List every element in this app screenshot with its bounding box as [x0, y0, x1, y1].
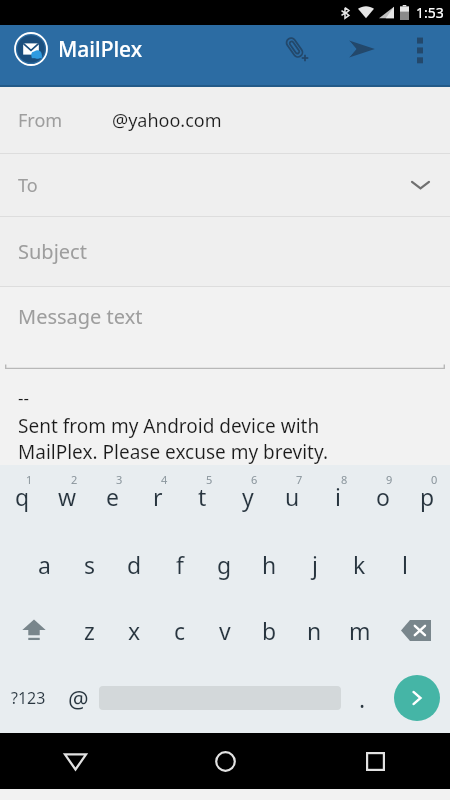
button[interactable]: From — [0, 87, 450, 153]
staticText: e — [106, 481, 119, 512]
button[interactable]: Send — [338, 25, 386, 73]
staticText: From — [18, 108, 63, 133]
button[interactable]: j — [292, 531, 337, 597]
staticText: f — [176, 549, 184, 580]
staticText: Message text — [18, 303, 143, 330]
staticText: MailPlex — [58, 35, 143, 64]
staticText: Subject — [18, 238, 87, 265]
button[interactable]: @ — [57, 663, 99, 733]
button[interactable]: x — [112, 597, 157, 663]
staticText: 3 — [116, 472, 123, 487]
staticText: d — [127, 549, 142, 580]
button[interactable]: ?123 — [0, 663, 57, 733]
staticText: x — [128, 615, 141, 646]
staticText: 4 — [161, 472, 168, 487]
button[interactable]: 5 — [180, 465, 225, 531]
button[interactable]: k — [337, 531, 382, 597]
staticText: 1 — [26, 472, 33, 487]
staticText: 1:53 — [416, 3, 444, 22]
button[interactable]: h — [247, 531, 292, 597]
staticText: 0 — [431, 472, 438, 487]
button[interactable]: Subject — [0, 217, 450, 286]
staticText: s — [84, 549, 96, 580]
staticText: y — [242, 481, 254, 512]
button[interactable]: c — [157, 597, 202, 663]
button[interactable]: v — [202, 597, 247, 663]
staticText: 7 — [296, 472, 303, 487]
staticText: o — [376, 481, 390, 512]
button[interactable]: 0 — [405, 465, 450, 531]
staticText: 6 — [251, 472, 258, 487]
staticText: g — [217, 549, 232, 580]
staticText: 2 — [71, 472, 78, 487]
button[interactable]: l — [382, 531, 427, 597]
button[interactable]: d — [112, 531, 157, 597]
button[interactable]: g — [202, 531, 247, 597]
button[interactable]: f — [157, 531, 202, 597]
button[interactable]: 2 — [45, 465, 90, 531]
staticText: r — [153, 481, 163, 512]
button[interactable]: Shift — [0, 597, 67, 663]
button[interactable]: z — [67, 597, 112, 663]
button[interactable]: b — [247, 597, 292, 663]
button[interactable]: 8 — [315, 465, 360, 531]
button[interactable]: More options — [398, 27, 442, 71]
staticText: @yahoo.com — [112, 108, 222, 133]
button[interactable]: Enter — [383, 663, 450, 733]
button[interactable]: Home — [150, 733, 300, 789]
button[interactable]: n — [292, 597, 337, 663]
button[interactable]: Expand recipients — [398, 163, 442, 207]
button[interactable]: To — [0, 154, 450, 216]
staticText: 9 — [386, 472, 393, 487]
button[interactable]: 1 — [0, 465, 45, 531]
button[interactable]: s — [67, 531, 112, 597]
staticText: k — [353, 549, 366, 580]
staticText: Sent from my Android device with — [18, 413, 320, 439]
staticText: i — [335, 481, 341, 512]
button[interactable]: 4 — [135, 465, 180, 531]
staticText: p — [420, 481, 435, 512]
staticText: j — [312, 549, 318, 580]
staticText: z — [84, 615, 95, 646]
staticText: q — [15, 481, 30, 512]
staticText: a — [38, 549, 51, 580]
button[interactable]: Backspace — [382, 597, 450, 663]
button[interactable]: 3 — [90, 465, 135, 531]
button[interactable]: 9 — [360, 465, 405, 531]
button[interactable]: 7 — [270, 465, 315, 531]
button[interactable]: Back — [0, 733, 150, 789]
staticText: To — [18, 173, 38, 198]
staticText: MailPlex. Please excuse my brevity. — [18, 439, 328, 465]
staticText: . — [359, 683, 366, 714]
button[interactable]: Message text — [0, 287, 450, 465]
staticText: ?123 — [11, 687, 46, 709]
staticText: n — [307, 615, 322, 646]
button[interactable]: MailPlex — [14, 32, 143, 66]
staticText: b — [262, 615, 277, 646]
button[interactable]: Recent apps — [300, 733, 450, 789]
staticText: c — [174, 615, 186, 646]
staticText: w — [58, 481, 77, 512]
button[interactable] — [99, 663, 341, 733]
staticText: 8 — [341, 472, 348, 487]
button[interactable]: a — [22, 531, 67, 597]
button[interactable]: Attach file — [272, 25, 320, 73]
staticText: @ — [68, 683, 89, 714]
button[interactable]: m — [337, 597, 382, 663]
staticText: u — [285, 481, 300, 512]
staticText: -- — [18, 386, 29, 409]
button[interactable]: . — [341, 663, 383, 733]
staticText: h — [262, 549, 277, 580]
staticText: 5 — [206, 472, 213, 487]
button[interactable]: 6 — [225, 465, 270, 531]
staticText: m — [349, 615, 371, 646]
staticText: t — [198, 481, 207, 512]
staticText: v — [219, 615, 231, 646]
staticText: l — [402, 549, 408, 580]
